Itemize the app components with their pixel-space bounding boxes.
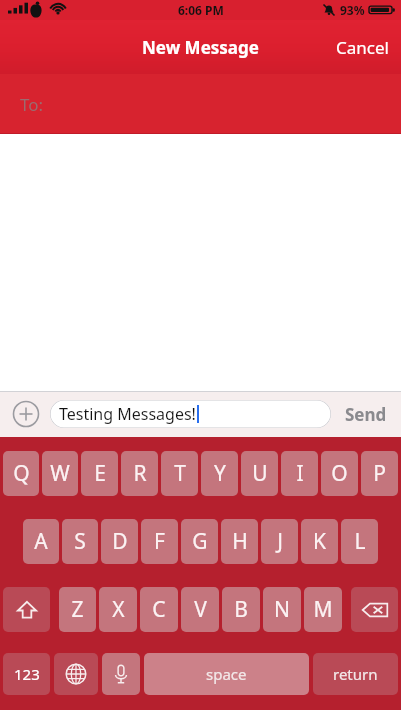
button[interactable]: Backspace (351, 587, 398, 632)
button[interactable]: 123 (3, 653, 50, 695)
staticText: 6:06 PM (178, 2, 224, 18)
button[interactable]: Shift (3, 587, 50, 632)
button[interactable]: M (304, 587, 342, 632)
staticText: 93% (340, 2, 365, 18)
button[interactable]: D (101, 519, 138, 564)
button[interactable]: R (121, 451, 158, 496)
staticText: Q (13, 459, 30, 488)
button[interactable]: return (313, 653, 398, 695)
staticText: O (331, 459, 348, 488)
staticText: E (94, 459, 106, 488)
staticText: I (296, 459, 304, 488)
button[interactable]: J (261, 519, 298, 564)
button[interactable]: O (321, 451, 358, 496)
staticText: Testing Messages! (59, 403, 196, 425)
staticText: L (354, 527, 366, 556)
button[interactable]: Testing Messages! (50, 400, 331, 428)
staticText: S (74, 527, 86, 556)
staticText: Z (71, 595, 84, 624)
staticText: J (277, 527, 283, 556)
staticText: Y (214, 459, 226, 488)
staticText: N (274, 595, 290, 624)
button[interactable]: Z (59, 587, 96, 632)
staticText: P (373, 459, 386, 488)
button[interactable]: K (301, 519, 338, 564)
button[interactable]: Dictate (102, 653, 140, 695)
staticText: Send (345, 403, 387, 426)
button[interactable]: Cancel (324, 26, 401, 69)
button[interactable]: U (241, 451, 278, 496)
button[interactable]: F (141, 519, 178, 564)
button[interactable]: S (62, 519, 98, 564)
button[interactable]: I (281, 451, 318, 496)
button[interactable]: To: (0, 74, 401, 134)
staticText: New Message (142, 36, 259, 59)
button[interactable]: Y (201, 451, 238, 496)
button[interactable]: B (222, 587, 260, 632)
button[interactable]: H (221, 519, 258, 564)
button[interactable]: V (181, 587, 219, 632)
button[interactable]: W (42, 451, 78, 496)
staticText: G (192, 527, 208, 556)
button[interactable]: X (99, 587, 137, 632)
button[interactable]: A (23, 519, 59, 564)
staticText: C (152, 595, 166, 624)
staticText: R (133, 459, 147, 488)
staticText: return (333, 664, 378, 684)
staticText: X (112, 595, 125, 624)
staticText: B (234, 595, 248, 624)
staticText: A (34, 527, 48, 556)
staticText: T (174, 459, 186, 488)
button[interactable]: E (81, 451, 118, 496)
button[interactable]: Add attachment (10, 398, 42, 430)
staticText: To: (20, 93, 44, 116)
button[interactable]: G (181, 519, 218, 564)
button[interactable]: C (140, 587, 178, 632)
staticText: K (313, 527, 326, 556)
staticText: U (252, 459, 268, 488)
button[interactable]: Send (341, 397, 391, 432)
staticText: W (50, 459, 70, 488)
staticText: V (194, 595, 207, 624)
button[interactable]: N (263, 587, 301, 632)
staticText: F (154, 527, 165, 556)
staticText: H (232, 527, 248, 556)
staticText: Cancel (336, 36, 389, 59)
button[interactable]: P (361, 451, 398, 496)
button[interactable]: T (161, 451, 198, 496)
button[interactable]: Q (3, 451, 39, 496)
staticText: M (313, 595, 333, 624)
staticText: D (112, 527, 128, 556)
button[interactable]: space (144, 653, 309, 695)
button[interactable]: L (341, 519, 378, 564)
button[interactable]: Change keyboard language (54, 653, 98, 695)
staticText: 123 (14, 664, 40, 684)
staticText: space (206, 664, 247, 684)
